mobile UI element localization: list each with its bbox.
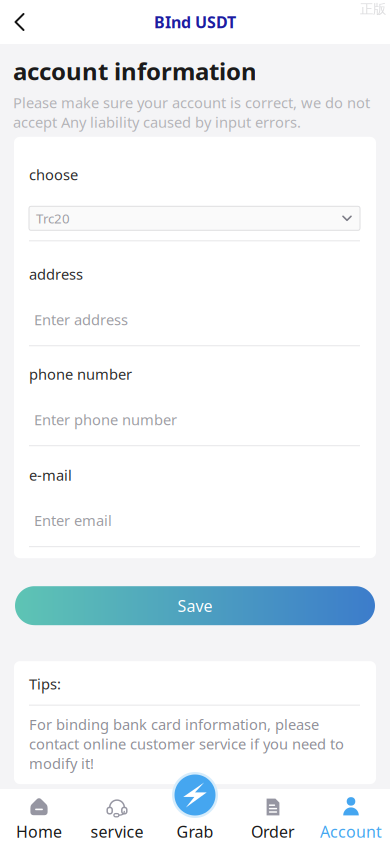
staticText: Please make sure your account is correct… xyxy=(13,93,370,132)
staticText: account information xyxy=(13,55,257,87)
staticText: Tips: xyxy=(29,674,61,694)
staticText: 正版 xyxy=(360,1,386,17)
staticText: service xyxy=(90,821,143,842)
staticText: phone number xyxy=(29,364,132,384)
staticText: Enter email xyxy=(34,511,112,530)
button[interactable]: Grab xyxy=(156,789,234,844)
staticText: Order xyxy=(251,821,295,842)
button[interactable]: Save xyxy=(15,586,375,625)
staticText: Grab xyxy=(176,821,213,842)
staticText: Enter address xyxy=(34,310,128,329)
button[interactable]: Account xyxy=(312,789,390,844)
staticText: Account xyxy=(320,821,382,842)
button[interactable]: Home xyxy=(0,789,78,844)
staticText: choose xyxy=(29,165,78,184)
staticText: Trc20 xyxy=(36,209,70,227)
button[interactable]: Order xyxy=(234,789,312,844)
staticText: Home xyxy=(16,821,62,842)
staticText: Save xyxy=(177,595,212,616)
button[interactable]: Grab xyxy=(156,772,234,818)
staticText: BInd USDT xyxy=(154,11,236,33)
staticText: For binding bank card information, pleas… xyxy=(29,715,344,773)
staticText: address xyxy=(29,264,83,284)
button[interactable]: Back xyxy=(0,2,37,42)
button[interactable]: service xyxy=(78,789,156,844)
staticText: e-mail xyxy=(29,465,72,485)
staticText: Enter phone number xyxy=(34,410,177,429)
